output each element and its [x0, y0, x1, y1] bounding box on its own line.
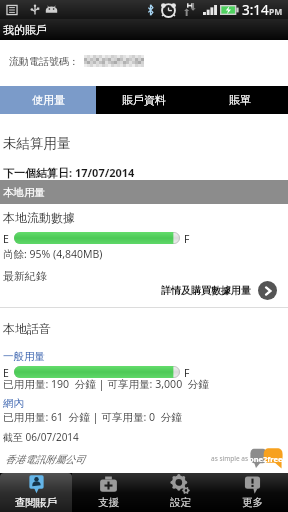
staticText: 賬戶資料 — [122, 93, 166, 107]
staticText: as simple as — [211, 454, 249, 463]
staticText: 設定 — [170, 496, 191, 509]
staticText: 我的賬戶 — [3, 23, 47, 37]
staticText: 更多 — [242, 496, 263, 509]
staticText: E — [3, 232, 9, 246]
staticText: F — [184, 366, 190, 380]
staticText: 已用用量: 61 分鐘 | 可享用量: 0 分鐘 — [3, 410, 182, 424]
staticText: 尚餘: 95% (4,840MB) — [3, 247, 103, 261]
other: 詳情及購買數據用量 — [258, 281, 277, 300]
staticText: E — [3, 366, 9, 380]
staticText: 未結算用量 — [3, 135, 71, 152]
button[interactable]: 詳情及購買數據用量 — [161, 279, 277, 302]
staticText: 查閱賬戶 — [15, 496, 57, 509]
staticText: 本地流動數據 — [3, 210, 75, 225]
button[interactable]: 設定 — [144, 473, 216, 512]
button[interactable]: 使用量 — [0, 86, 96, 114]
staticText: one2free — [249, 454, 283, 464]
staticText: 使用量 — [32, 93, 65, 107]
staticText: 已用用量: 190 分鐘 | 可享用量: 3,000 分鐘 — [3, 377, 209, 391]
staticText: 一般用量 — [3, 350, 45, 363]
staticText: 本地用量 — [3, 186, 45, 199]
button[interactable]: 賬單 — [192, 86, 288, 114]
staticText: 3:14 — [242, 1, 269, 19]
staticText: 本地話音 — [3, 321, 51, 336]
staticText: 流動電話號碼： — [9, 55, 79, 68]
staticText: 截至 06/07/2014 — [3, 430, 79, 444]
staticText: 最新紀錄 — [3, 269, 47, 283]
button[interactable]: 賬戶資料 — [96, 86, 192, 114]
staticText: 網內 — [3, 397, 24, 410]
button[interactable]: 更多 — [216, 473, 288, 512]
button[interactable]: 查閱賬戶 — [0, 473, 72, 512]
staticText: PM — [269, 6, 283, 18]
staticText: 賬單 — [229, 93, 251, 107]
staticText: 支援 — [98, 496, 119, 509]
staticText: 香港電訊附屬公司 — [5, 453, 85, 466]
staticText: 詳情及購買數據用量 — [161, 284, 251, 297]
staticText: 下一個結算日: 17/07/2014 — [3, 165, 135, 180]
button[interactable]: 支援 — [72, 473, 144, 512]
staticText: F — [184, 232, 190, 246]
